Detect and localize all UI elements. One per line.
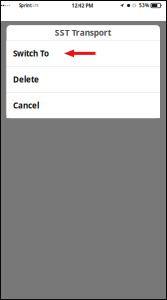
staticText: Cancel — [13, 100, 39, 111]
staticText: 12:42 PM — [71, 2, 93, 9]
button[interactable]: Cancel — [6, 93, 160, 118]
staticText: SST Transport — [55, 27, 112, 38]
button[interactable]: Switch To — [6, 41, 160, 66]
staticText: 53% — [139, 2, 149, 9]
button[interactable]: Delete — [6, 67, 160, 92]
staticText: Delete — [13, 74, 39, 85]
staticText: LTE — [32, 3, 38, 8]
staticText: Sprint — [19, 3, 32, 8]
staticText: Switch To — [13, 48, 49, 59]
